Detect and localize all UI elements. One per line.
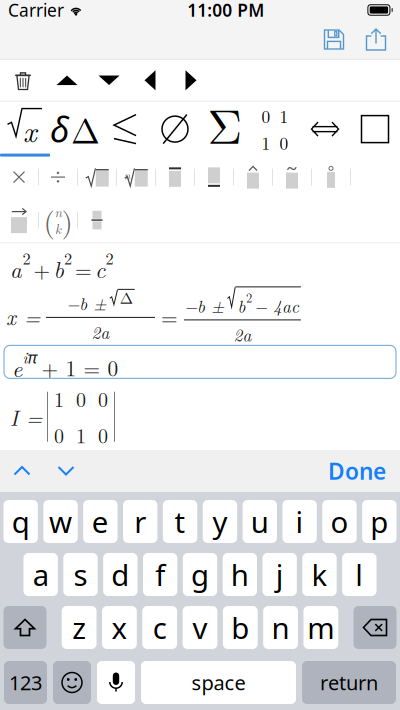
- button[interactable]: [150, 102, 200, 157]
- staticText: 2a: [233, 322, 251, 346]
- staticText: b: [237, 293, 245, 318]
- button[interactable]: s: [63, 553, 98, 596]
- button[interactable]: [312, 160, 350, 194]
- button[interactable]: [78, 203, 116, 237]
- button[interactable]: Move down: [88, 60, 130, 101]
- button[interactable]: Dictate: [97, 661, 135, 704]
- button[interactable]: p: [362, 500, 396, 543]
- button[interactable]: j: [262, 553, 297, 596]
- button[interactable]: [350, 102, 400, 157]
- button[interactable]: [273, 160, 311, 194]
- button[interactable]: Move up: [46, 60, 88, 101]
- button[interactable]: Move left: [130, 60, 170, 101]
- button[interactable]: Previous field: [0, 450, 44, 492]
- staticText: + 1 = 0: [41, 352, 118, 382]
- button[interactable]: e: [0, 345, 400, 378]
- button[interactable]: [234, 160, 272, 194]
- staticText: 0: [261, 103, 270, 128]
- staticText: +: [33, 254, 50, 284]
- button[interactable]: m: [303, 606, 338, 649]
- staticText: x: [111, 608, 127, 647]
- button[interactable]: r: [123, 500, 157, 543]
- staticText: i: [296, 502, 304, 541]
- staticText: z: [72, 608, 86, 647]
- button[interactable]: d: [103, 553, 137, 596]
- button[interactable]: b: [223, 606, 258, 649]
- button[interactable]: δ: [50, 102, 100, 157]
- staticText: =: [161, 301, 178, 331]
- button[interactable]: e: [83, 500, 117, 543]
- button[interactable]: f: [143, 553, 177, 596]
- button[interactable]: Share: [355, 20, 397, 59]
- button[interactable]: q: [3, 500, 38, 543]
- staticText: a: [33, 555, 49, 594]
- button[interactable]: Delete: [0, 60, 46, 101]
- button[interactable]: return: [302, 661, 396, 704]
- staticText: c: [153, 608, 167, 647]
- button[interactable]: [300, 102, 350, 157]
- button[interactable]: [39, 160, 77, 194]
- button[interactable]: (: [39, 203, 77, 237]
- staticText: k: [311, 555, 327, 594]
- button[interactable]: h: [223, 553, 257, 596]
- button[interactable]: 123: [4, 661, 47, 704]
- staticText: s: [73, 555, 87, 594]
- button[interactable]: a: [0, 243, 400, 287]
- staticText: 0: [279, 130, 288, 155]
- staticText: w: [49, 502, 72, 541]
- staticText: k: [55, 219, 61, 238]
- button[interactable]: Save: [313, 20, 355, 59]
- button[interactable]: [100, 102, 150, 157]
- staticText: 0: [76, 384, 86, 413]
- button[interactable]: n: [263, 606, 298, 649]
- staticText: (: [43, 199, 54, 241]
- button[interactable]: a: [23, 553, 58, 596]
- button[interactable]: w: [43, 500, 78, 543]
- button[interactable]: Shift: [3, 606, 46, 649]
- button[interactable]: Next field: [44, 450, 88, 492]
- button[interactable]: g: [183, 553, 217, 596]
- staticText: =: [75, 254, 92, 284]
- staticText: 2: [22, 246, 30, 269]
- button[interactable]: n: [117, 160, 155, 194]
- staticText: Δ: [120, 291, 133, 307]
- button[interactable]: x: [102, 606, 137, 649]
- staticText: n: [54, 202, 61, 221]
- button[interactable]: Delete: [353, 606, 396, 649]
- button[interactable]: Emoji: [53, 661, 91, 704]
- button[interactable]: space: [141, 661, 296, 704]
- staticText: 1: [54, 384, 64, 413]
- staticText: −b ±: [184, 293, 224, 318]
- button[interactable]: z: [62, 606, 97, 649]
- button[interactable]: x: [0, 102, 50, 157]
- button[interactable]: [156, 160, 194, 194]
- button[interactable]: y: [203, 500, 237, 543]
- button[interactable]: Move right: [170, 60, 212, 101]
- button[interactable]: t: [163, 500, 197, 543]
- button[interactable]: Σ: [200, 102, 250, 157]
- staticText: u: [251, 502, 269, 541]
- staticText: 11:00 PM: [187, 0, 264, 21]
- staticText: q: [12, 502, 30, 541]
- staticText: h: [231, 555, 249, 594]
- button[interactable]: v: [183, 606, 217, 649]
- staticText: δ: [50, 105, 69, 153]
- staticText: 0: [98, 421, 108, 449]
- button[interactable]: [0, 160, 38, 194]
- button[interactable]: Done: [314, 450, 400, 492]
- button[interactable]: 0: [250, 102, 300, 157]
- staticText: 2: [105, 246, 113, 269]
- button[interactable]: k: [302, 553, 337, 596]
- button[interactable]: x =: [0, 287, 400, 345]
- button[interactable]: c: [142, 606, 177, 649]
- button[interactable]: [195, 160, 233, 194]
- staticText: r: [134, 502, 146, 541]
- button[interactable]: o: [322, 500, 357, 543]
- staticText: d: [111, 555, 129, 594]
- button[interactable]: I =: [0, 378, 400, 449]
- button[interactable]: u: [243, 500, 277, 543]
- button[interactable]: [0, 203, 38, 237]
- button[interactable]: [78, 160, 116, 194]
- button[interactable]: l: [342, 553, 376, 596]
- button[interactable]: i: [282, 500, 317, 543]
